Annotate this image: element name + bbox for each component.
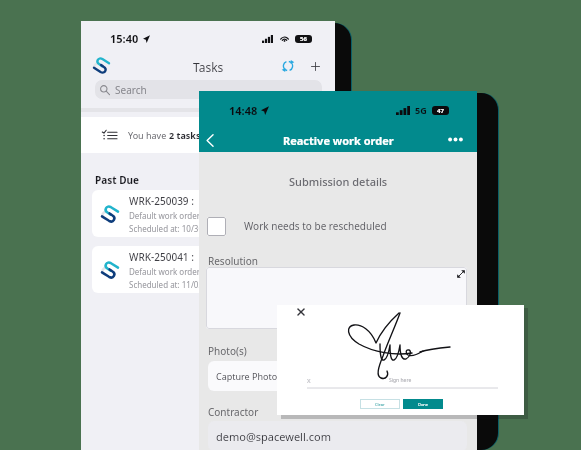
button[interactable]: WRK-250039 : — [92, 190, 324, 237]
staticText: You have — [128, 129, 169, 141]
staticText: Default work order f — [129, 210, 205, 221]
staticText: Resolution — [208, 254, 258, 268]
staticText: X — [307, 377, 311, 385]
button[interactable]: More options — [448, 134, 463, 145]
staticText: Reactive work order — [283, 133, 394, 148]
staticText: Search — [115, 83, 147, 97]
button[interactable]: Expand — [457, 270, 465, 278]
staticText: Sign here — [389, 377, 412, 384]
staticText: WRK-250041 : — [129, 250, 194, 264]
button[interactable]: Work needs to be rescheduled — [207, 213, 387, 239]
staticText: 5G — [415, 104, 427, 116]
staticText: 2 tasks — [169, 129, 201, 141]
button[interactable]: Search — [95, 80, 322, 99]
button[interactable]: Done — [403, 399, 443, 409]
staticText: 14:48 — [229, 103, 258, 118]
staticText: Capture Photo — [216, 370, 278, 382]
button[interactable]: Add task — [310, 61, 321, 72]
staticText: 47 — [437, 107, 444, 115]
staticText: Work needs to be rescheduled — [244, 219, 387, 233]
staticText: Scheduled at: 11/02 — [129, 279, 204, 290]
staticText: Photo(s) — [208, 344, 247, 358]
staticText: Contractor — [208, 405, 259, 419]
staticText: Past Due — [95, 173, 139, 187]
staticText: Done — [418, 402, 429, 407]
button[interactable]: WRK-250041 : — [92, 246, 324, 293]
staticText: Clear — [375, 402, 385, 407]
staticText: Submission details — [289, 174, 388, 189]
button[interactable]: demo@spacewell.com — [208, 421, 467, 450]
button[interactable]: Back — [206, 134, 214, 147]
staticText: demo@spacewell.com — [216, 429, 331, 444]
button[interactable]: Close — [297, 308, 305, 316]
staticText: Tasks — [193, 59, 224, 75]
button[interactable]: Refresh — [281, 59, 295, 73]
staticText: WRK-250039 : — [129, 194, 194, 208]
button[interactable]: You have — [81, 117, 335, 153]
button[interactable]: Clear — [360, 399, 400, 409]
staticText: Scheduled at: 10/30 — [129, 223, 204, 234]
staticText: 56 — [300, 35, 307, 43]
staticText: Default work order f — [129, 266, 205, 277]
button[interactable]: Capture Photo — [208, 361, 467, 391]
button[interactable]: Spacewell logo — [94, 58, 109, 73]
staticText: 15:40 — [110, 31, 139, 46]
